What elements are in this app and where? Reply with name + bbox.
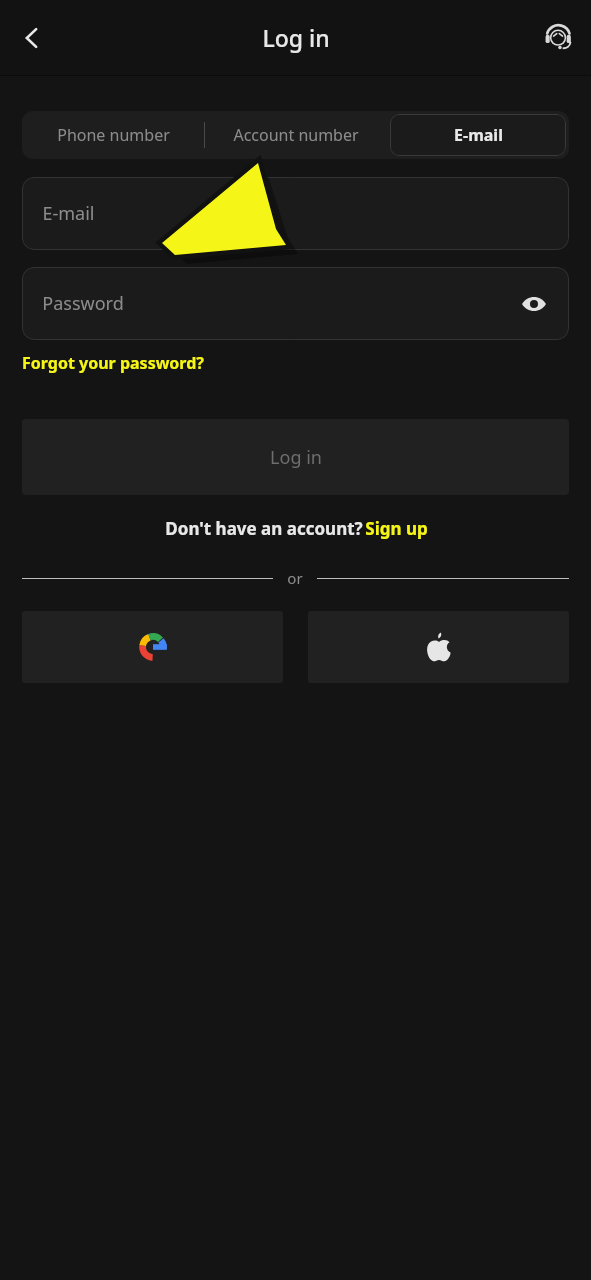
button[interactable]: Support — [535, 14, 583, 62]
staticText: Don't have an account? — [163, 517, 365, 540]
staticText: Log in — [270, 445, 322, 470]
staticText: Account number — [233, 124, 359, 146]
staticText: Password — [42, 291, 124, 316]
button[interactable]: Sign up — [365, 517, 428, 540]
staticText: Sign up — [365, 517, 428, 540]
button[interactable]: Forgot your password? — [22, 352, 204, 374]
button[interactable]: E-mail — [22, 177, 569, 250]
staticText: Forgot your password? — [22, 352, 204, 374]
staticText: or — [287, 568, 303, 588]
staticText: Log in — [262, 22, 330, 53]
button[interactable]: Sign in with Apple — [308, 611, 569, 683]
button[interactable]: Back — [8, 14, 56, 62]
button[interactable]: Phone number — [25, 114, 201, 156]
button[interactable]: Password — [22, 267, 569, 340]
button[interactable]: Show password — [517, 287, 551, 321]
button[interactable]: Sign in with Google — [22, 611, 283, 683]
staticText: E-mail — [42, 201, 95, 226]
button[interactable]: E-mail — [390, 114, 566, 156]
staticText: E-mail — [454, 124, 503, 146]
button[interactable]: Account number — [208, 114, 384, 156]
button[interactable]: Log in — [22, 419, 569, 495]
staticText: Phone number — [57, 124, 170, 146]
